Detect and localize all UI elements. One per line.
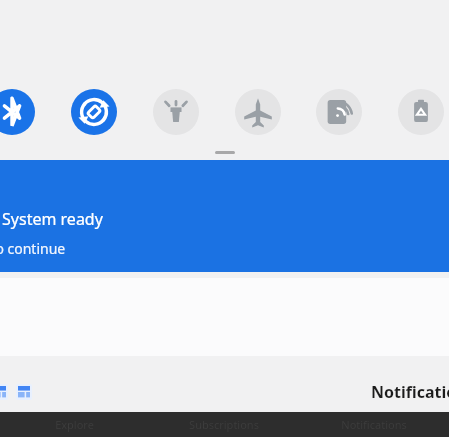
staticText: Notifications bbox=[341, 417, 407, 432]
button[interactable]: Notification shortcut bbox=[16, 384, 32, 400]
staticText: Notifications bbox=[371, 381, 449, 403]
staticText: Android System ready bbox=[0, 208, 103, 230]
button[interactable]: Nearby Share bbox=[316, 89, 362, 135]
button[interactable]: Airplane mode bbox=[235, 89, 281, 135]
button[interactable]: Notification shortcut bbox=[0, 384, 8, 400]
button[interactable]: Flashlight bbox=[153, 89, 199, 135]
button[interactable]: Battery Saver bbox=[398, 89, 444, 135]
staticText: Subscriptions bbox=[189, 417, 259, 432]
button[interactable]: Android System ready bbox=[0, 160, 449, 272]
staticText: Explore bbox=[55, 417, 94, 432]
button[interactable]: Bluetooth bbox=[0, 89, 35, 135]
button[interactable]: Auto rotate bbox=[71, 89, 117, 135]
staticText: Tap here to continue bbox=[0, 239, 66, 258]
